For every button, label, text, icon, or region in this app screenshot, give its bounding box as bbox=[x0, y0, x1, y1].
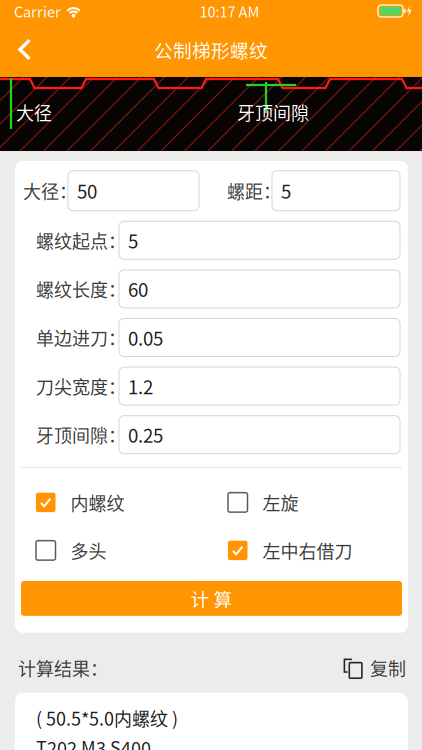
button[interactable]: 内螺纹 bbox=[36, 489, 228, 515]
staticText: 公制梯形螺纹 bbox=[154, 36, 268, 63]
staticText: 螺距： bbox=[227, 178, 281, 204]
staticText: T202 M3 S400 bbox=[36, 734, 151, 750]
staticText: 大径 bbox=[16, 99, 52, 125]
staticText: 10:17 AM bbox=[199, 0, 259, 22]
staticText: 左中右借刀 bbox=[262, 537, 352, 563]
staticText: 50 bbox=[77, 177, 97, 204]
staticText: Carrier bbox=[14, 0, 61, 22]
button[interactable]: 左旋 bbox=[228, 489, 394, 515]
staticText: 刀尖宽度： bbox=[36, 373, 126, 399]
staticText: 牙顶间隙 bbox=[237, 99, 309, 125]
staticText: 螺纹长度： bbox=[36, 276, 126, 302]
staticText: 复制 bbox=[370, 655, 406, 681]
staticText: 5 bbox=[128, 227, 138, 254]
button[interactable]: Back bbox=[0, 22, 48, 76]
staticText: 大径： bbox=[23, 178, 77, 204]
staticText: 螺纹起点： bbox=[36, 227, 126, 253]
staticText: 1.2 bbox=[128, 373, 153, 400]
button[interactable]: 左中右借刀 bbox=[228, 537, 394, 563]
staticText: 左旋 bbox=[262, 489, 298, 515]
staticText: 60 bbox=[128, 275, 148, 302]
button[interactable]: 计 算 bbox=[21, 581, 402, 616]
staticText: 多头 bbox=[70, 537, 106, 563]
staticText: 计算结果： bbox=[18, 655, 108, 681]
staticText: 0.05 bbox=[128, 324, 163, 351]
button[interactable]: 多头 bbox=[36, 537, 228, 563]
staticText: 单边进刀： bbox=[36, 324, 126, 351]
staticText: 内螺纹 bbox=[70, 489, 124, 515]
button[interactable]: 复制 bbox=[343, 655, 406, 681]
staticText: 5 bbox=[281, 177, 291, 204]
staticText: 0.25 bbox=[128, 421, 163, 448]
staticText: 计 算 bbox=[190, 585, 232, 612]
staticText: ( 50.5*5.0内螺纹 ) bbox=[36, 705, 178, 731]
staticText: 牙顶间隙： bbox=[36, 422, 126, 448]
